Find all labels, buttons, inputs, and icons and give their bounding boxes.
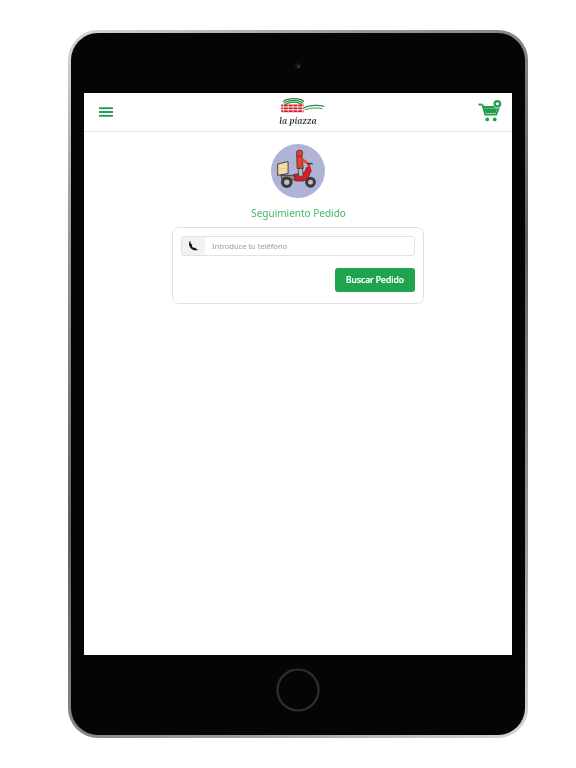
staticText: Introduce tu teléfono [212,241,288,251]
button[interactable]: Shopping cart, 0 items [474,97,504,127]
button[interactable]: Buscar Pedido [335,268,415,292]
staticText: Seguimiento Pedido [251,206,346,220]
button[interactable]: Introduce tu teléfono [181,236,415,256]
staticText: Buscar Pedido [346,274,404,286]
staticText: la piazza [279,115,317,126]
button[interactable]: Menu [92,98,120,126]
button[interactable]: La Piazza home [269,97,327,127]
